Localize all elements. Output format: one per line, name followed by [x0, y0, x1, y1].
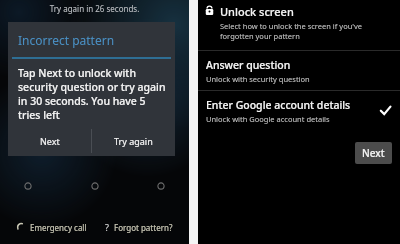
staticText: Next	[362, 146, 385, 160]
staticText: Try again	[114, 135, 153, 147]
staticText: ?	[105, 221, 109, 233]
staticText: Unlock with Google account details	[206, 114, 330, 124]
staticText: Emergency call	[30, 222, 87, 233]
button[interactable]: Next	[355, 142, 392, 164]
staticText: Next	[40, 135, 60, 147]
button[interactable]: Try again	[92, 128, 175, 154]
staticText: Select how to unlock the screen if you'v…	[220, 21, 392, 41]
staticText: Answer question	[206, 58, 291, 72]
staticText: Unlock with security question	[206, 74, 310, 84]
button[interactable]: Next	[8, 128, 91, 154]
other: Lock	[204, 5, 215, 16]
other: Selected	[379, 104, 392, 117]
staticText: Forgot pattern?	[114, 222, 173, 233]
button[interactable]: ?	[101, 219, 177, 235]
staticText: Incorrect pattern	[18, 32, 115, 48]
button[interactable]: Enter Google account details	[198, 91, 400, 130]
staticText: Unlock screen	[220, 4, 294, 19]
staticText: Try again in 26 seconds.	[0, 3, 189, 14]
staticText: Enter Google account details	[206, 98, 351, 112]
button[interactable]: Answer question	[198, 51, 400, 90]
staticText: Tap Next to unlock with security questio…	[18, 66, 166, 122]
button[interactable]: Emergency call	[12, 220, 91, 235]
